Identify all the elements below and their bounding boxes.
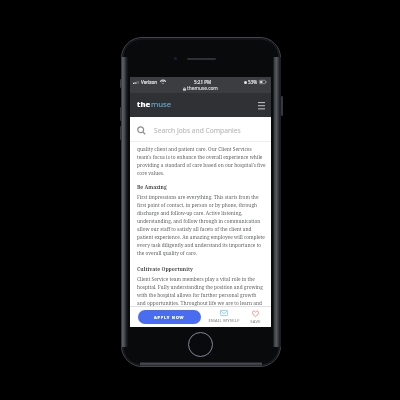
staticText: 5:21 PM xyxy=(194,79,212,85)
staticText: themuse.com xyxy=(187,85,218,92)
button[interactable]: Menu xyxy=(255,99,268,111)
button[interactable]: the xyxy=(137,99,172,110)
staticText: First impressions are everything. This s… xyxy=(137,194,266,257)
staticText: Cultivate Opportunity xyxy=(137,266,193,273)
staticText: quality client and patient care. Our Cli… xyxy=(137,146,266,177)
button[interactable]: SAVE xyxy=(243,310,268,325)
button[interactable]: APPLY NOW xyxy=(138,310,201,324)
staticText: SAVE xyxy=(250,319,261,325)
button[interactable]: Search Jobs and Companies xyxy=(130,117,271,142)
staticText: Search Jobs and Companies xyxy=(154,126,241,135)
staticText: the xyxy=(137,99,151,110)
staticText: Be Amazing xyxy=(137,184,167,191)
staticText: EMAIL MYSELF xyxy=(208,318,240,324)
staticText: APPLY NOW xyxy=(154,315,185,320)
button[interactable]: EMAIL MYSELF xyxy=(206,310,242,324)
staticText: Verizon xyxy=(141,79,158,85)
staticText: Client Service team members play a vital… xyxy=(137,276,266,306)
staticText: muse xyxy=(151,99,172,110)
staticText: 53% xyxy=(248,79,258,85)
